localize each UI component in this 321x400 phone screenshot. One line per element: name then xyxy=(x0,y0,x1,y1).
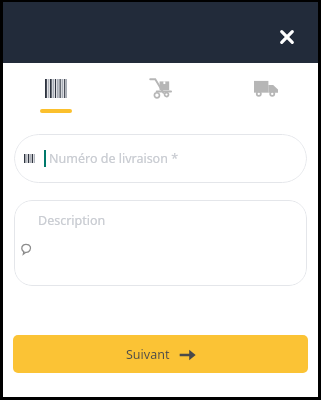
button[interactable]: Chariot xyxy=(108,63,213,109)
button[interactable]: Camion xyxy=(213,63,318,109)
button[interactable]: Code-barres xyxy=(3,63,108,113)
staticText: Numéro de livraison * xyxy=(49,150,179,167)
staticText: Description xyxy=(38,212,106,229)
button[interactable]: Numéro de livraison * xyxy=(14,134,307,183)
button[interactable]: Description xyxy=(14,200,307,286)
staticText: Suivant xyxy=(126,346,170,363)
button[interactable]: Fermer xyxy=(270,20,304,54)
button[interactable]: Suivant xyxy=(13,335,308,373)
